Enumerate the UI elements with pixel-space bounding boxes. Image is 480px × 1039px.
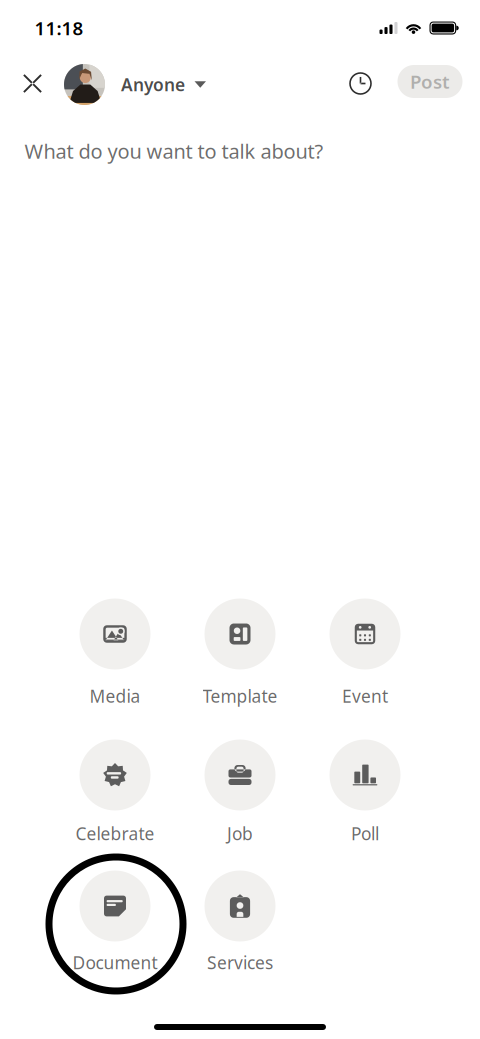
- button[interactable]: Job: [177, 734, 302, 844]
- staticText: Post: [410, 69, 450, 94]
- staticText: Anyone: [121, 73, 185, 96]
- button[interactable]: Document: [52, 865, 177, 975]
- staticText: Celebrate: [75, 822, 154, 845]
- staticText: Media: [89, 684, 140, 707]
- staticText: Services: [207, 951, 273, 974]
- button[interactable]: Post: [397, 65, 462, 98]
- button[interactable]: Poll: [302, 734, 427, 844]
- staticText: What do you want to talk about?: [24, 138, 323, 164]
- button[interactable]: Media: [52, 593, 177, 703]
- button[interactable]: Services: [177, 865, 302, 975]
- button[interactable]: Schedule post: [338, 61, 382, 105]
- button[interactable]: Celebrate: [52, 734, 177, 844]
- button[interactable]: Template: [177, 593, 302, 703]
- button[interactable]: Event: [302, 593, 427, 703]
- staticText: Job: [227, 822, 253, 845]
- staticText: Document: [72, 951, 157, 974]
- staticText: Template: [202, 684, 277, 707]
- staticText: 11:18: [34, 16, 83, 40]
- button[interactable]: Close: [10, 61, 54, 105]
- staticText: Event: [342, 684, 388, 707]
- button[interactable]: Anyone: [64, 62, 206, 106]
- staticText: Poll: [351, 822, 379, 845]
